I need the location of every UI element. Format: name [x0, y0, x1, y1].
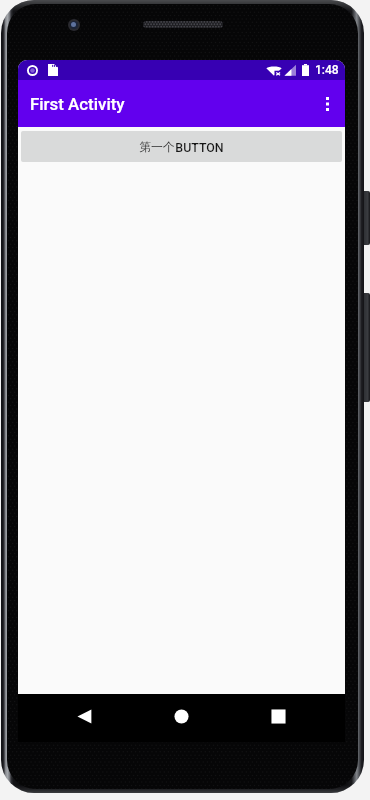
- staticText: BUTTON: [175, 140, 224, 155]
- button[interactable]: Back: [68, 700, 100, 732]
- staticText: First Activity: [30, 94, 125, 114]
- button[interactable]: Home: [165, 700, 197, 732]
- button[interactable]: 第一个: [21, 131, 342, 162]
- button[interactable]: Recents: [262, 700, 294, 732]
- staticText: 1:48: [315, 63, 339, 77]
- staticText: 第一个: [139, 140, 175, 155]
- button[interactable]: More options: [309, 80, 345, 127]
